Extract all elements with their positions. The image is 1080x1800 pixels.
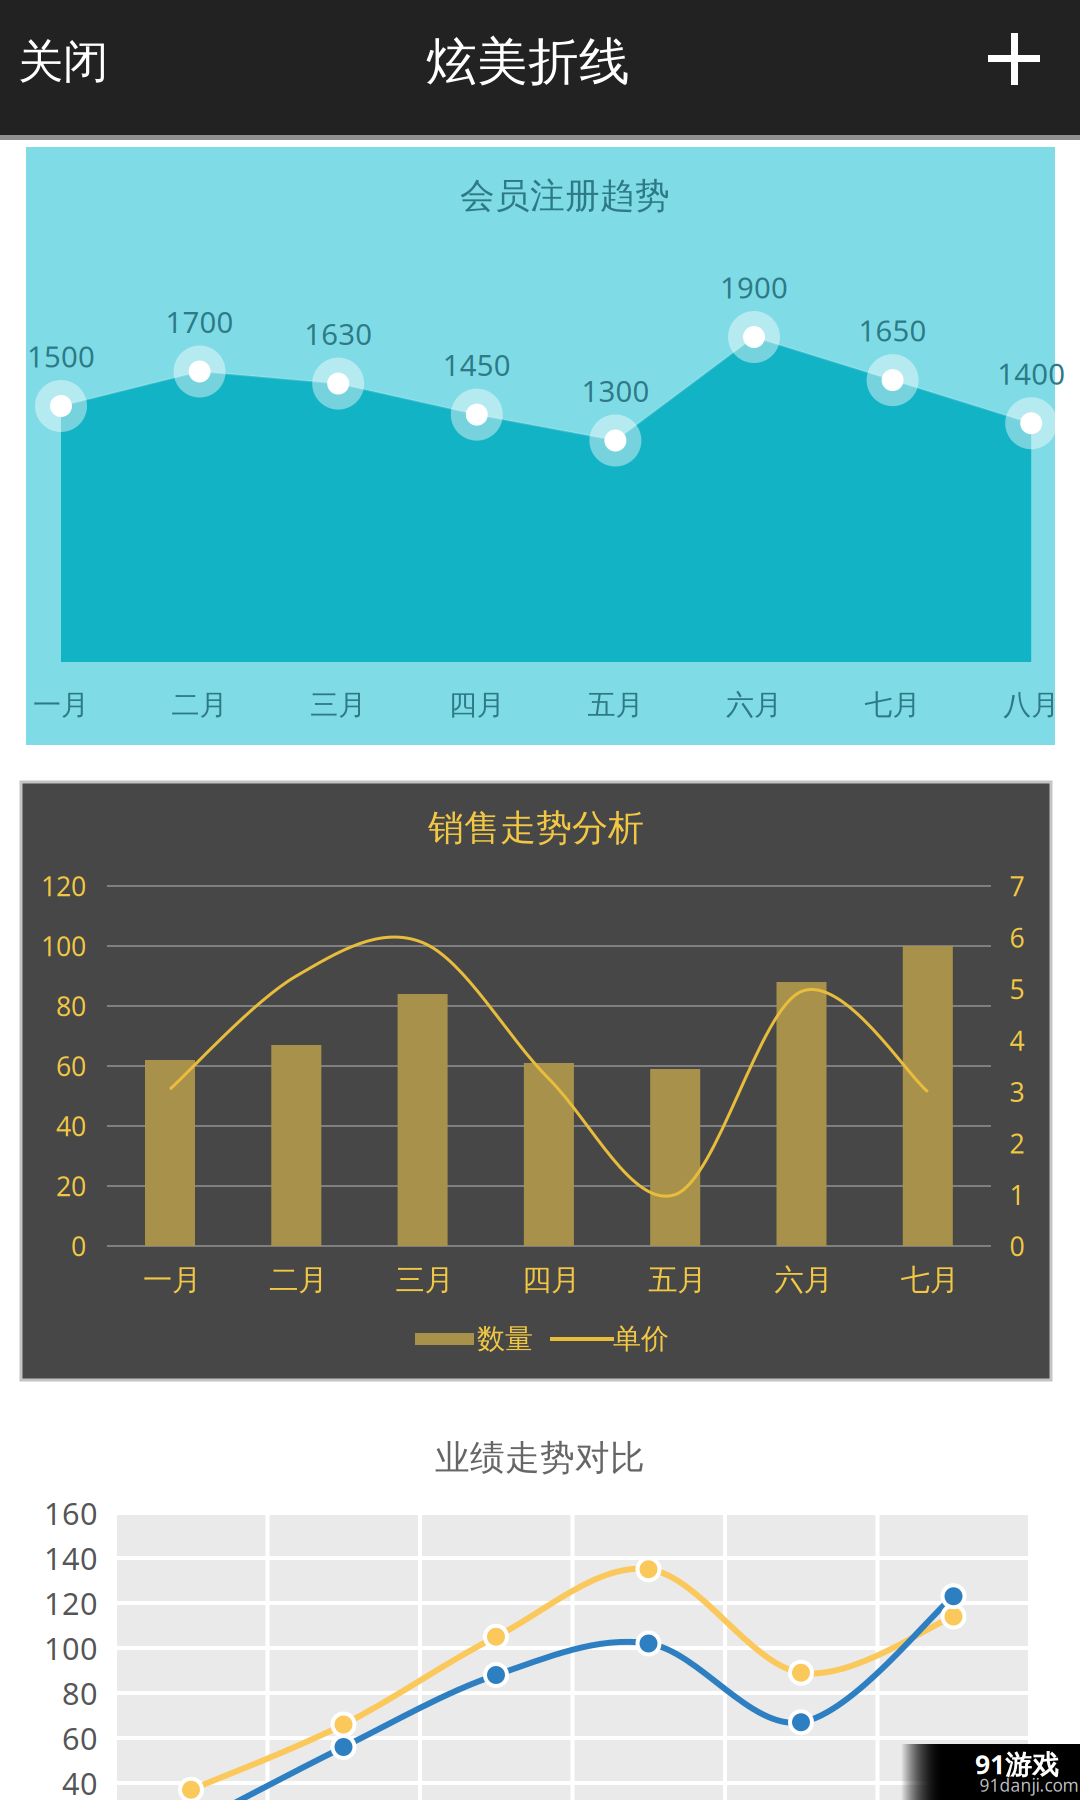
staticText: 0 xyxy=(71,1228,86,1264)
staticText: 160 xyxy=(44,1493,98,1533)
staticText: 销售走势分析 xyxy=(428,806,644,850)
staticText: 0 xyxy=(1009,1228,1024,1264)
staticText: 五月 xyxy=(648,1262,706,1298)
staticText: 7 xyxy=(1009,868,1024,904)
staticText: 80 xyxy=(62,1673,98,1713)
staticText: 1500 xyxy=(27,336,95,375)
staticText: 数量 xyxy=(477,1322,533,1356)
staticText: 七月 xyxy=(901,1262,959,1298)
staticText: 四月 xyxy=(449,688,505,722)
staticText: 三月 xyxy=(310,688,366,722)
staticText: 3 xyxy=(1009,1074,1024,1109)
staticText: 120 xyxy=(44,1583,98,1623)
staticText: 四月 xyxy=(522,1262,580,1298)
staticText: 40 xyxy=(56,1108,86,1144)
staticText: 会员注册趋势 xyxy=(460,175,670,217)
staticText: 91游戏 xyxy=(975,1746,1059,1782)
staticText: 40 xyxy=(62,1763,98,1800)
staticText: 五月 xyxy=(587,688,643,722)
staticText: 七月 xyxy=(865,688,921,722)
staticText: 1650 xyxy=(859,311,927,350)
staticText: 4 xyxy=(1009,1023,1024,1058)
staticText: 2 xyxy=(1009,1125,1024,1161)
staticText: 1400 xyxy=(997,354,1065,393)
staticText: 六月 xyxy=(726,688,782,722)
staticText: 60 xyxy=(62,1718,98,1758)
staticText: 1 xyxy=(1009,1177,1024,1212)
staticText: 二月 xyxy=(172,688,228,722)
staticText: 一月 xyxy=(33,688,89,722)
staticText: 八月 xyxy=(1003,688,1059,722)
staticText: 20 xyxy=(56,1168,86,1204)
staticText: 业绩走势对比 xyxy=(435,1437,645,1479)
staticText: 100 xyxy=(41,928,86,964)
staticText: 1300 xyxy=(581,371,649,410)
staticText: 140 xyxy=(44,1538,98,1578)
button[interactable]: 关闭 xyxy=(0,0,170,100)
staticText: 1450 xyxy=(443,345,511,384)
button[interactable]: Add xyxy=(0,0,58,58)
staticText: 三月 xyxy=(396,1262,454,1298)
staticText: 60 xyxy=(56,1048,86,1084)
staticText: 5 xyxy=(1009,971,1024,1007)
staticText: 120 xyxy=(41,868,86,904)
staticText: 91danji.com xyxy=(979,1773,1078,1796)
staticText: 六月 xyxy=(774,1262,832,1298)
staticText: 6 xyxy=(1009,920,1024,955)
staticText: 炫美折线 xyxy=(426,31,630,93)
staticText: 1630 xyxy=(304,314,372,353)
staticText: 100 xyxy=(44,1628,98,1668)
staticText: 二月 xyxy=(269,1262,327,1298)
staticText: 1900 xyxy=(720,267,788,306)
staticText: 单价 xyxy=(613,1322,669,1356)
staticText: 一月 xyxy=(143,1262,201,1298)
staticText: 80 xyxy=(56,988,86,1024)
staticText: 1700 xyxy=(166,302,234,341)
staticText: 关闭 xyxy=(18,34,108,90)
